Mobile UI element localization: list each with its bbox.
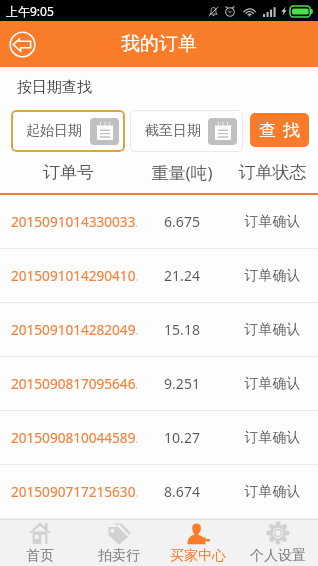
staticText: 上午9:05 [6,3,54,19]
staticText: 2015091014290410. [11,266,137,285]
staticText: 订单确认 [227,267,318,285]
staticText: 2015091014282049. [11,320,137,339]
button[interactable]: 2015091014282049. [0,303,318,356]
staticText: 拍卖行 [98,547,140,565]
button[interactable]: 买家中心 [158,520,238,566]
button[interactable]: 2015090817095646. [0,357,318,410]
button[interactable]: 起始日期 [11,110,125,152]
staticText: 按日期查找 [17,78,92,97]
staticText: 8.674 [137,482,227,501]
staticText: 2015091014330033. [11,212,137,231]
staticText: 21.24 [137,266,227,285]
staticText: 订单号 [0,162,137,183]
staticText: 订单确认 [227,429,318,447]
staticText: 6.675 [137,212,227,231]
button[interactable]: 2015091014330033. [0,195,318,248]
button[interactable]: 2015090810044589. [0,411,318,464]
staticText: 起始日期 [26,122,82,140]
staticText: 个人设置 [250,547,306,565]
staticText: 2015090810044589. [11,428,137,447]
staticText: 订单确认 [227,213,318,231]
staticText: 订单状态 [227,162,318,183]
staticText: 10.27 [137,428,227,447]
staticText: 截至日期 [145,122,201,140]
staticText: 2015090817095646. [11,374,137,393]
button[interactable]: 截至日期 [130,110,243,152]
button[interactable]: 个人设置 [238,520,318,566]
staticText: 找 [283,120,300,141]
staticText: 订单确认 [227,375,318,393]
staticText: 我的订单 [121,32,197,56]
button[interactable]: 2015091014290410. [0,249,318,302]
button[interactable]: 返回 [5,27,39,61]
button[interactable]: 2015090717215630. [0,465,318,518]
staticText: 查 [259,120,276,141]
staticText: 订单确认 [227,483,318,501]
button[interactable]: 查 [250,113,309,147]
staticText: 2015090717215630. [11,482,137,501]
staticText: 重量(吨) [137,161,227,184]
button[interactable]: 拍卖行 [79,520,158,566]
staticText: 买家中心 [170,547,226,565]
staticText: 15.18 [137,320,227,339]
staticText: 首页 [26,547,54,565]
button[interactable]: 首页 [0,520,79,566]
staticText: 9.251 [137,374,227,393]
staticText: 订单确认 [227,321,318,339]
